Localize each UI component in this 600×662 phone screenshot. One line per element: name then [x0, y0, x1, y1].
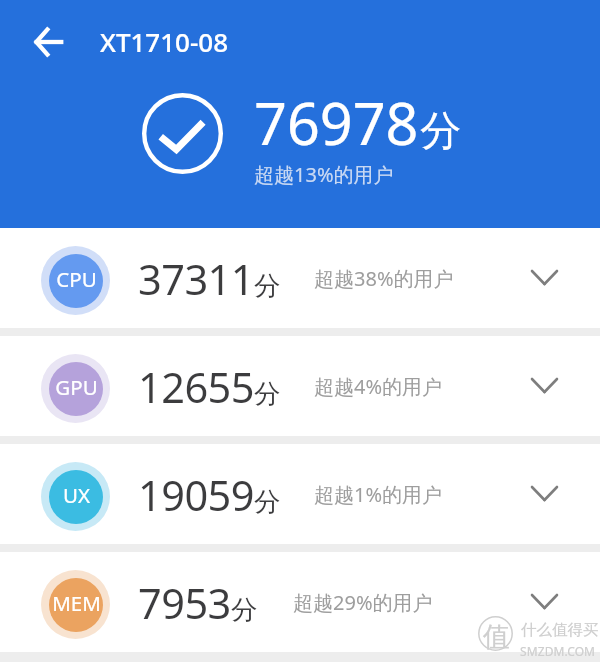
staticText: 什么值得买: [521, 620, 599, 640]
button[interactable]: UX: [0, 444, 600, 544]
staticText: 超越4%的用户: [314, 373, 443, 400]
staticText: 超越38%的用户: [314, 265, 454, 292]
button[interactable]: Back: [23, 16, 75, 68]
staticText: 分: [254, 269, 281, 302]
button[interactable]: Expand: [508, 350, 580, 422]
button[interactable]: GPU: [0, 336, 600, 436]
staticText: 分: [420, 106, 461, 158]
staticText: 超越13%的用户: [254, 161, 394, 188]
staticText: CPU: [56, 265, 97, 293]
staticText: UX: [63, 481, 90, 509]
staticText: 超越29%的用户: [293, 589, 433, 616]
staticText: 37311: [138, 251, 254, 308]
staticText: 19059: [138, 467, 254, 524]
staticText: SMZDM.COM: [520, 643, 596, 659]
staticText: 分: [254, 485, 281, 518]
staticText: XT1710-08: [100, 24, 229, 59]
staticText: 值: [483, 620, 510, 654]
staticText: 12655: [138, 359, 254, 416]
staticText: 超越1%的用户: [314, 481, 443, 508]
button[interactable]: CPU: [0, 228, 600, 328]
button[interactable]: Expand: [508, 242, 580, 314]
staticText: MEM: [52, 589, 101, 617]
staticText: 分: [254, 377, 281, 410]
staticText: 分: [231, 593, 258, 626]
button[interactable]: Expand: [508, 458, 580, 530]
staticText: GPU: [55, 373, 98, 401]
staticText: 76978: [254, 84, 419, 162]
button[interactable]: Expand: [508, 566, 580, 638]
staticText: 7953: [138, 575, 231, 632]
button[interactable]: MEM: [0, 552, 600, 652]
